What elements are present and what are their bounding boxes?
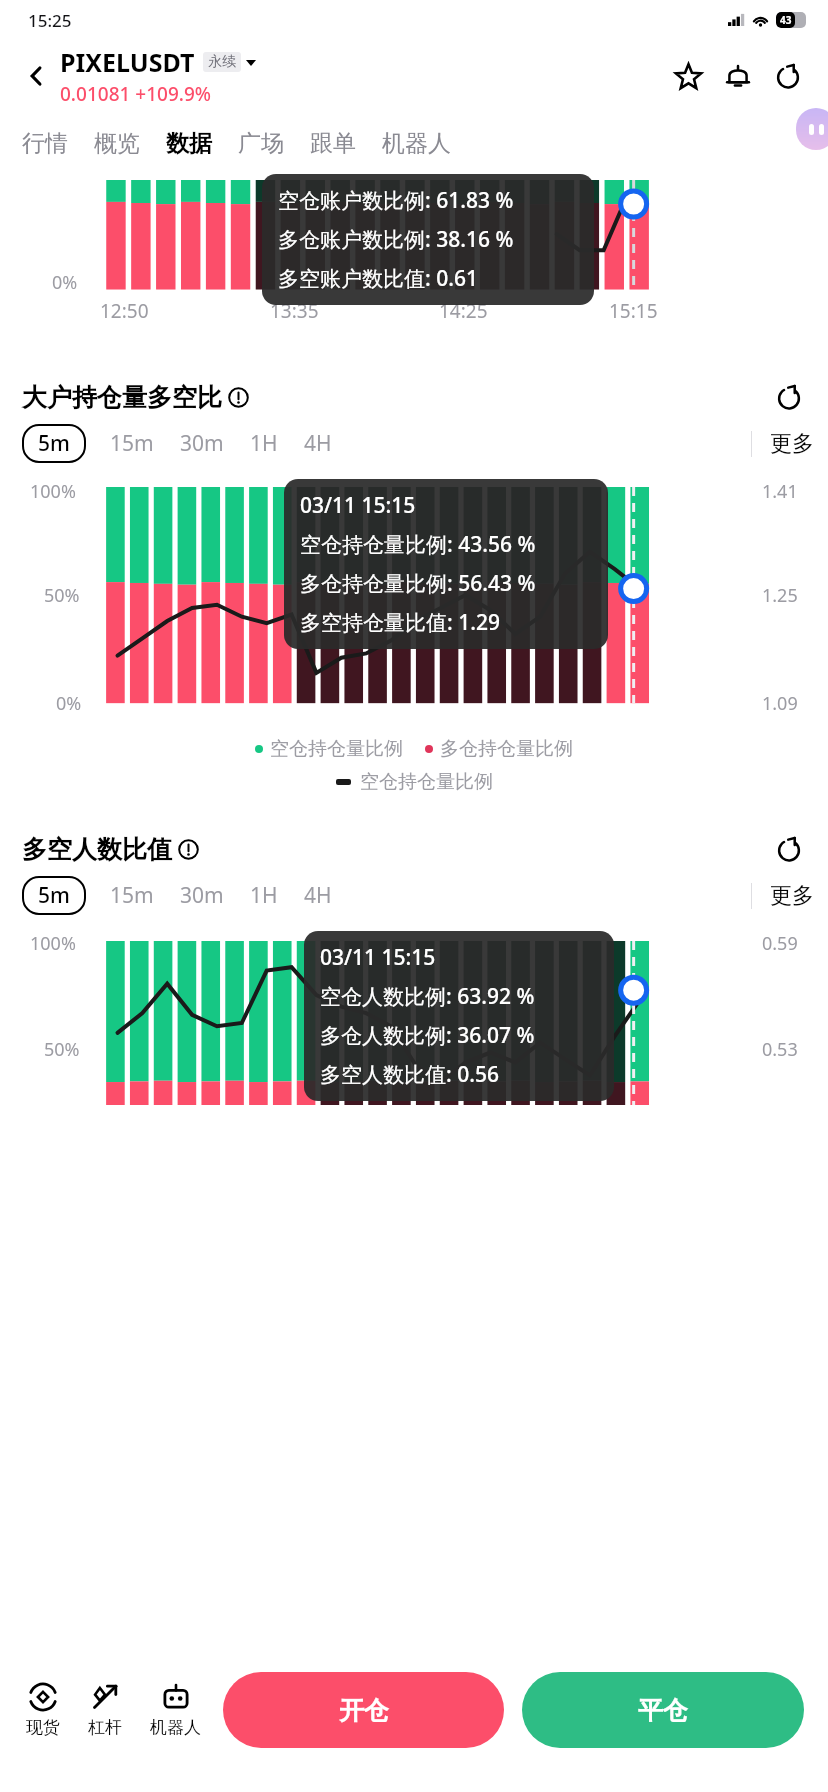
- staticText: 0%: [56, 691, 82, 716]
- staticText: 1.41: [762, 479, 798, 504]
- button[interactable]: 概览: [94, 129, 140, 158]
- button[interactable]: 15m: [110, 881, 154, 910]
- button[interactable]: 大户持仓量多空比: [22, 380, 806, 414]
- staticText: 概览: [94, 129, 140, 158]
- staticText: 多空持仓量比值: 1.29: [300, 608, 500, 637]
- staticText: 多仓持仓量比例: [440, 737, 573, 761]
- button[interactable]: 行情: [22, 129, 68, 158]
- staticText: 30m: [180, 429, 224, 458]
- staticText: 13:35: [270, 298, 319, 324]
- staticText: 广场: [238, 129, 284, 158]
- staticText: 机器人: [150, 1717, 201, 1738]
- staticText: 机器人: [382, 129, 451, 158]
- staticText: 4H: [304, 881, 332, 910]
- staticText: 14:25: [439, 298, 488, 324]
- staticText: 平仓: [638, 1695, 688, 1726]
- button[interactable]: 数据: [166, 129, 212, 158]
- button[interactable]: 现货: [26, 1682, 60, 1738]
- button[interactable]: 5m: [38, 429, 70, 458]
- staticText: PIXELUSDT: [60, 45, 195, 79]
- staticText: 永续: [208, 53, 236, 71]
- staticText: 空仓人数比例: 63.92 %: [320, 982, 535, 1011]
- button[interactable]: Favorite: [668, 56, 708, 96]
- button[interactable]: Back: [20, 59, 54, 93]
- staticText: 行情: [22, 129, 68, 158]
- button[interactable]: 平仓: [522, 1672, 804, 1748]
- staticText: 43: [780, 13, 792, 27]
- button[interactable]: 永续: [208, 53, 236, 71]
- staticText: 5m: [38, 429, 70, 458]
- button[interactable]: Assistant: [796, 108, 828, 150]
- staticText: 0%: [52, 270, 78, 295]
- button[interactable]: 跟单: [310, 129, 356, 158]
- staticText: 0.59: [762, 931, 798, 956]
- button[interactable]: Expand: [772, 380, 806, 414]
- staticText: 数据: [166, 129, 212, 158]
- button[interactable]: Alerts: [718, 56, 758, 96]
- button[interactable]: 4H: [304, 429, 332, 458]
- button[interactable]: 15m: [110, 429, 154, 458]
- staticText: 12:50: [100, 298, 149, 324]
- button[interactable]: 30m: [180, 881, 224, 910]
- staticText: 0.01081 +109.9%: [60, 81, 212, 107]
- staticText: 空仓持仓量比例: [360, 770, 493, 794]
- button[interactable]: 机器人: [382, 129, 451, 158]
- staticText: 空仓持仓量比例: [270, 737, 403, 761]
- staticText: 大户持仓量多空比: [22, 382, 222, 413]
- button[interactable]: 杠杆: [88, 1682, 122, 1738]
- staticText: 空仓持仓量比例: 43.56 %: [300, 530, 536, 559]
- staticText: 更多: [770, 882, 814, 910]
- button[interactable]: 4H: [304, 881, 332, 910]
- staticText: 杠杆: [88, 1717, 122, 1738]
- staticText: 多空人数比值: 0.56: [320, 1060, 499, 1089]
- staticText: 100%: [30, 479, 76, 504]
- staticText: 1.25: [762, 583, 798, 608]
- staticText: 1H: [250, 429, 278, 458]
- button[interactable]: 1H: [250, 881, 278, 910]
- staticText: 03/11 15:15: [320, 943, 436, 972]
- button[interactable]: 更多: [770, 882, 814, 910]
- button[interactable]: 多空人数比值: [22, 832, 806, 866]
- staticText: 15m: [110, 429, 154, 458]
- staticText: 15m: [110, 881, 154, 910]
- button[interactable]: Share: [768, 56, 808, 96]
- staticText: 多仓持仓量比例: 56.43 %: [300, 569, 536, 598]
- button[interactable]: 更多: [770, 430, 814, 458]
- button[interactable]: Expand: [772, 832, 806, 866]
- staticText: 更多: [770, 430, 814, 458]
- staticText: 多仓账户数比例: 38.16 %: [278, 225, 514, 254]
- staticText: 03/11 15:15: [300, 491, 416, 520]
- staticText: 开仓: [339, 1695, 389, 1726]
- staticText: 多空人数比值: [22, 834, 172, 865]
- staticText: 1.09: [762, 691, 798, 716]
- staticText: 0.53: [762, 1037, 798, 1062]
- staticText: 现货: [26, 1717, 60, 1738]
- staticText: 15:25: [28, 9, 72, 32]
- button[interactable]: 机器人: [150, 1682, 201, 1738]
- staticText: 15:15: [609, 298, 658, 324]
- button[interactable]: 1H: [250, 429, 278, 458]
- staticText: 30m: [180, 881, 224, 910]
- button[interactable]: 30m: [180, 429, 224, 458]
- staticText: 空仓账户数比例: 61.83 %: [278, 186, 514, 215]
- staticText: 5m: [38, 881, 70, 910]
- button[interactable]: 广场: [238, 129, 284, 158]
- staticText: 100%: [30, 931, 76, 956]
- staticText: 跟单: [310, 129, 356, 158]
- button[interactable]: 5m: [38, 881, 70, 910]
- button[interactable]: 开仓: [223, 1672, 504, 1748]
- staticText: 50%: [44, 583, 80, 608]
- staticText: 50%: [44, 1037, 80, 1062]
- staticText: 4H: [304, 429, 332, 458]
- staticText: 1H: [250, 881, 278, 910]
- staticText: 多仓人数比例: 36.07 %: [320, 1021, 535, 1050]
- staticText: 多空账户数比值: 0.61: [278, 264, 478, 293]
